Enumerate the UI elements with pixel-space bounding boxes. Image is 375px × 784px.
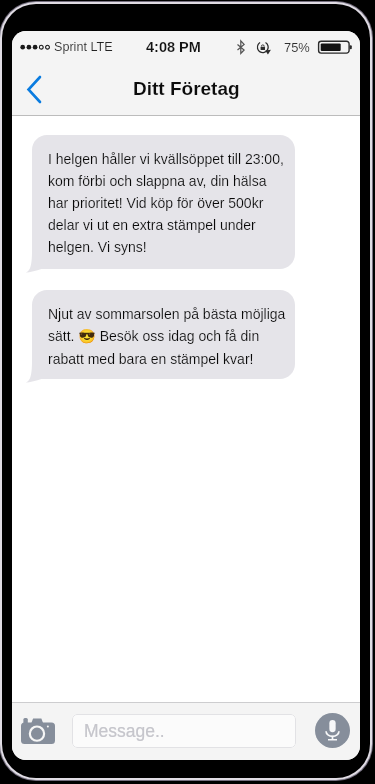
button[interactable]: Message.. [72, 714, 296, 748]
staticText: Njut av sommarsolen på bästa möjliga sät… [48, 301, 286, 368]
staticText: I helgen håller vi kvällsöppet till 23:0… [48, 146, 284, 256]
staticText: Message.. [84, 721, 165, 741]
staticText: Ditt Företag [133, 78, 240, 99]
button[interactable]: Back [12, 64, 56, 115]
button[interactable]: Camera [18, 711, 58, 751]
button[interactable]: Njut av sommarsolen på bästa möjliga sät… [24, 290, 295, 384]
staticText: Sprint LTE [54, 40, 113, 54]
button[interactable]: I helgen håller vi kvällsöppet till 23:0… [24, 135, 295, 274]
staticText: 75% [284, 40, 310, 54]
staticText: 4:08 PM [146, 39, 201, 55]
button[interactable]: Voice message [315, 713, 350, 748]
